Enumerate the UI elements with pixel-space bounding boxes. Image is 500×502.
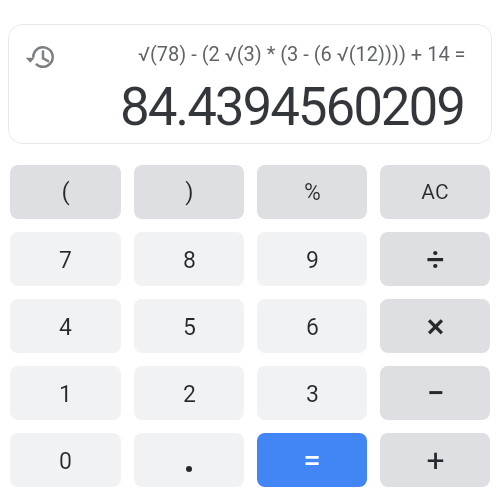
staticText: +	[426, 441, 445, 479]
button[interactable]: History	[23, 37, 63, 77]
staticText: %	[304, 179, 321, 206]
button[interactable]: 4	[10, 299, 121, 353]
button[interactable]: 8	[134, 232, 244, 286]
button[interactable]: )	[134, 165, 244, 219]
button[interactable]: (	[10, 165, 121, 219]
staticText: 7	[59, 247, 72, 274]
button[interactable]: 7	[10, 232, 121, 286]
button[interactable]: −	[380, 366, 490, 420]
staticText: 2	[183, 381, 196, 408]
button[interactable]: 0	[10, 433, 121, 487]
button[interactable]: 1	[10, 366, 121, 420]
button[interactable]: ÷	[380, 232, 490, 286]
button[interactable]: =	[257, 433, 367, 487]
staticText: −	[426, 374, 445, 412]
staticText: √(78) - (2 √(3) * (3 - (6 √(12)))) + 14 …	[138, 42, 466, 65]
button[interactable]: 3	[257, 366, 367, 420]
staticText: ÷	[426, 240, 445, 278]
staticText: ×	[426, 306, 445, 346]
button[interactable]: 9	[257, 232, 367, 286]
button[interactable]: 5	[134, 299, 244, 353]
button[interactable]: ×	[380, 299, 490, 353]
staticText: 4	[59, 314, 72, 341]
staticText: (	[61, 178, 70, 206]
button[interactable]: 2	[134, 366, 244, 420]
staticText: 8	[183, 247, 196, 274]
staticText: )	[185, 178, 194, 206]
button[interactable]	[134, 433, 244, 487]
button[interactable]: +	[380, 433, 490, 487]
button[interactable]: 6	[257, 299, 367, 353]
button[interactable]: AC	[380, 165, 490, 219]
staticText: AC	[421, 180, 449, 205]
staticText: 0	[59, 448, 72, 475]
button[interactable]: %	[257, 165, 367, 219]
staticText: 3	[306, 381, 319, 408]
staticText: 1	[59, 381, 72, 408]
staticText: 9	[306, 247, 319, 274]
staticText: 84.4394560209	[120, 76, 464, 138]
staticText: =	[303, 442, 321, 478]
staticText: 6	[306, 314, 319, 341]
staticText: 5	[183, 314, 196, 341]
